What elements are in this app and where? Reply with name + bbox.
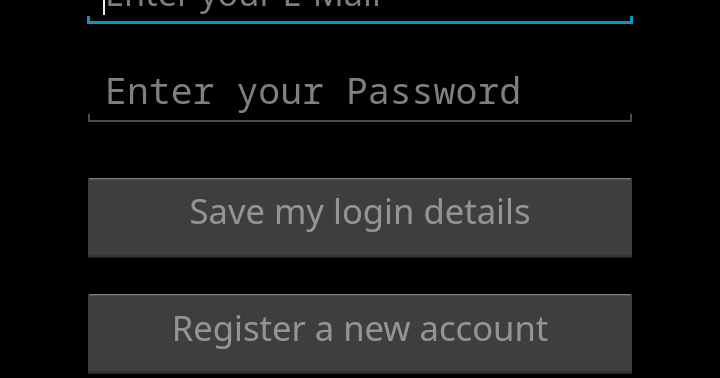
- staticText: Register a new account: [88, 304, 632, 374]
- staticText: Enter your Password: [105, 65, 522, 115]
- staticText: Enter your E-Mail: [105, 0, 381, 16]
- button[interactable]: Password input field: [88, 60, 632, 122]
- button[interactable]: Save my login details: [88, 178, 632, 258]
- staticText: Save my login details: [88, 187, 632, 258]
- button[interactable]: Register a new account: [88, 294, 632, 374]
- button[interactable]: E-Mail input field: [87, 0, 633, 24]
